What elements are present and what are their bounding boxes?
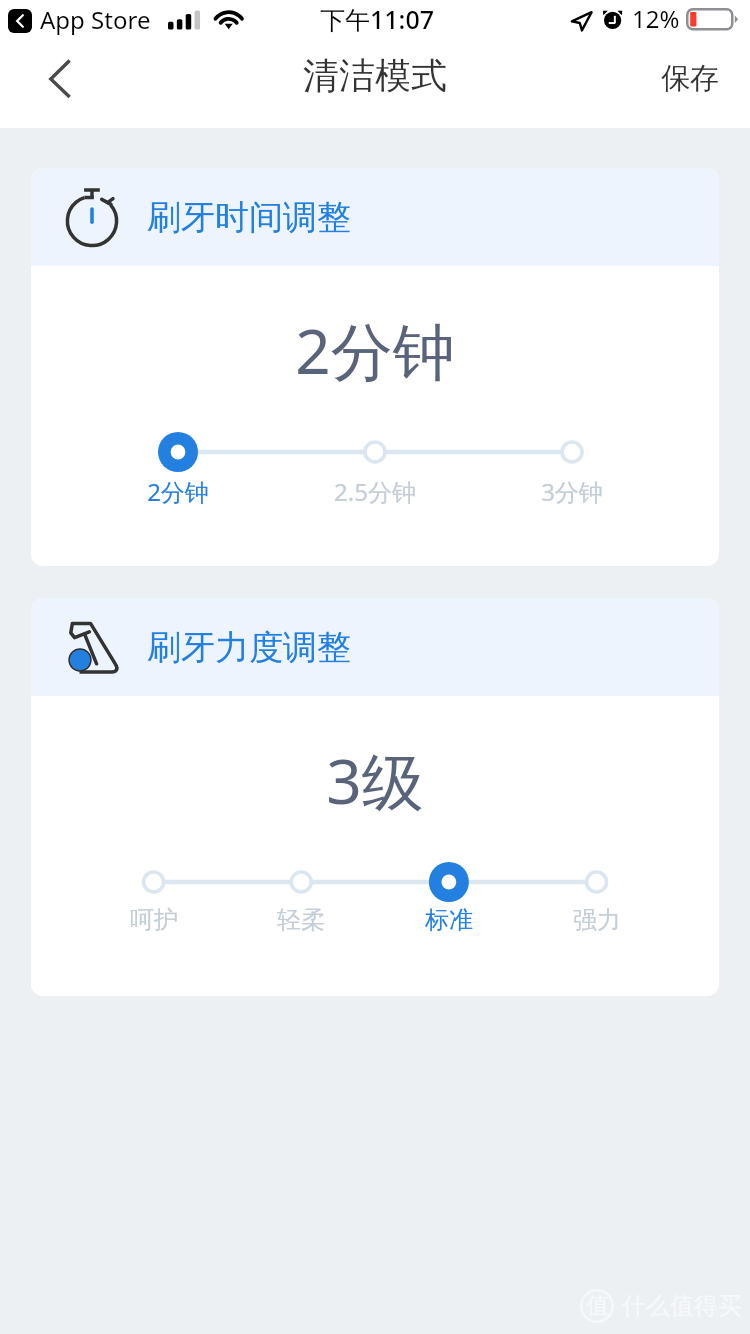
button[interactable]: 2分钟	[118, 475, 238, 513]
staticText: 标准	[425, 905, 473, 935]
staticText: 2分钟	[31, 308, 719, 393]
staticText: 清洁模式	[303, 53, 447, 98]
staticText: 2分钟	[147, 475, 209, 508]
staticText: App Store	[40, 3, 151, 36]
staticText: 呵护	[130, 905, 178, 935]
staticText: 轻柔	[277, 905, 325, 935]
staticText: 12%	[632, 2, 680, 35]
button[interactable]: 返回	[26, 55, 88, 117]
staticText: 3分钟	[541, 475, 603, 508]
staticText: 刷牙时间调整	[147, 196, 351, 239]
staticText: 下午11:07	[320, 2, 435, 36]
staticText: 3级	[31, 738, 719, 823]
staticText: 强力	[573, 905, 621, 935]
staticText: 值	[586, 1291, 609, 1320]
staticText: 保存	[661, 60, 719, 97]
staticText: 什么值得买	[622, 1291, 742, 1321]
button[interactable]: 2.5分钟	[315, 475, 435, 513]
button[interactable]: 轻柔	[241, 905, 361, 943]
staticText: 2.5分钟	[334, 475, 416, 508]
button[interactable]: 强力	[537, 905, 657, 943]
button[interactable]: 标准	[389, 905, 509, 943]
button[interactable]: 呵护	[94, 905, 214, 943]
button[interactable]: 保存	[630, 50, 750, 123]
button[interactable]: 3分钟	[512, 475, 632, 513]
staticText: 刷牙力度调整	[147, 626, 351, 669]
